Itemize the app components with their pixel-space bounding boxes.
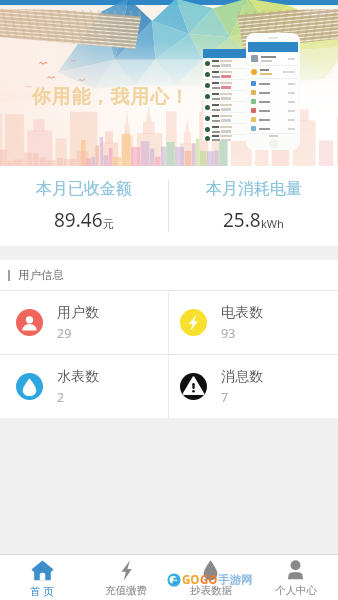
button[interactable]: Meter data (168, 555, 253, 600)
staticText: 本月消耗电量 (206, 179, 302, 199)
button[interactable]: Recharge (84, 555, 168, 600)
staticText: GO (182, 572, 200, 587)
button[interactable]: 用户数 (0, 291, 168, 354)
button[interactable]: 水表数 (0, 355, 168, 418)
button[interactable]: 本月消耗电量 (169, 166, 338, 246)
staticText: GO (200, 572, 218, 587)
staticText: 消息数 (221, 368, 263, 386)
staticText: 29 (57, 325, 72, 342)
staticText: 抄表数据 (190, 584, 232, 597)
staticText: 93 (221, 325, 236, 342)
staticText: 25.8 (223, 207, 261, 233)
button[interactable]: 电表数 (169, 291, 338, 354)
staticText: 手游网 (218, 573, 253, 587)
staticText: 个人中心 (275, 584, 317, 597)
staticText: 本月已收金额 (36, 179, 132, 199)
staticText: 7 (221, 389, 229, 406)
button[interactable]: 用户信息 (0, 260, 338, 290)
staticText: 用户数 (57, 304, 99, 322)
button[interactable]: 本月已收金额 (0, 166, 168, 246)
staticText: 电表数 (221, 304, 263, 322)
staticText: 89.46 (54, 207, 103, 233)
staticText: 水表数 (57, 368, 99, 386)
staticText: 充值缴费 (105, 584, 147, 597)
button[interactable]: 消息数 (169, 355, 338, 418)
staticText: 2 (57, 389, 65, 406)
button[interactable]: Home (0, 555, 84, 600)
staticText: 你用能，我用心！ (32, 85, 190, 108)
button[interactable]: Profile (253, 555, 338, 600)
staticText: 用户信息 (18, 268, 64, 282)
staticText: kWh (261, 216, 284, 231)
staticText: 首 页 (30, 584, 54, 598)
staticText: 元 (103, 217, 114, 231)
